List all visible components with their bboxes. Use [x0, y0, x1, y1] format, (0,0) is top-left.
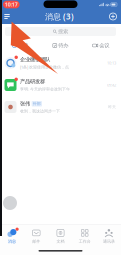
staticText: 张伟	[20, 100, 30, 107]
staticText: 搜索	[58, 28, 68, 35]
staticText: 企业微信团队	[20, 56, 50, 63]
staticText: [1条] 欢迎使用企业微信，点	[20, 64, 69, 70]
staticText: 外部	[33, 101, 41, 106]
staticText: 10:13	[107, 60, 116, 66]
button[interactable]: 邮件	[24, 228, 48, 244]
staticText: 昨天	[108, 104, 116, 109]
button[interactable]: 工作台	[73, 228, 97, 244]
button[interactable]: Menu	[0, 9, 14, 23]
staticText: 通讯录	[103, 239, 115, 244]
button[interactable]: 消息	[0, 228, 24, 244]
staticText: 会议	[99, 42, 109, 49]
button[interactable]: 会议	[81, 40, 121, 51]
staticText: 未读	[18, 42, 28, 49]
staticText: 李明: 今天的评审会改到下午	[20, 86, 70, 92]
staticText: 待办	[58, 42, 68, 49]
button[interactable]: 产品研发群	[0, 74, 121, 96]
button[interactable]: 待办	[40, 40, 81, 51]
staticText: 消息	[8, 239, 16, 244]
button[interactable]: 搜索	[0, 24, 121, 39]
button[interactable]: 企业微信团队	[0, 52, 121, 74]
staticText: 文档	[56, 239, 64, 244]
staticText: 10:17	[5, 1, 18, 8]
button[interactable]: 通讯录	[97, 228, 121, 244]
staticText: 产品研发群	[20, 78, 45, 85]
staticText: 邮件	[32, 239, 40, 244]
button[interactable]: 文档	[48, 228, 73, 244]
staticText: 09:42	[107, 82, 116, 88]
staticText: 消息 (3)	[45, 11, 74, 22]
button[interactable]: New message	[105, 9, 121, 23]
staticText: 工作台	[79, 239, 91, 244]
staticText: 收到，我这边同步一下	[20, 109, 60, 113]
button[interactable]: 未读	[0, 40, 40, 51]
button[interactable]: 张伟	[0, 96, 121, 118]
